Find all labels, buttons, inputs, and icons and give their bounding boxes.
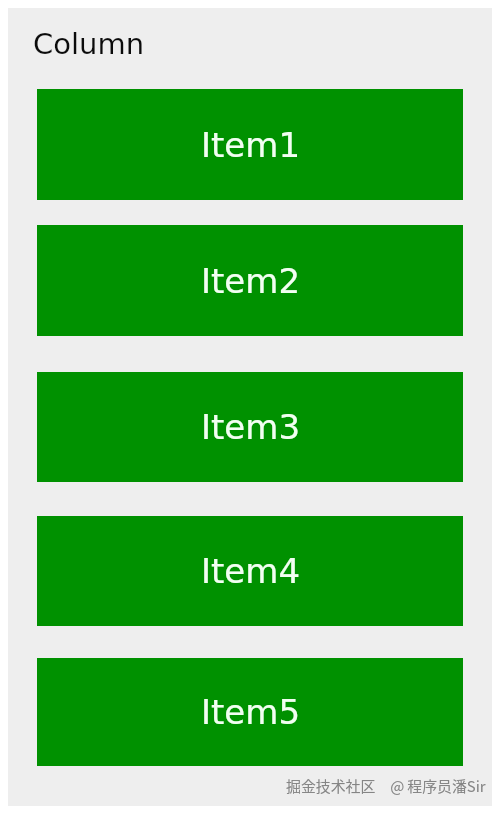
button[interactable]: Item4: [37, 516, 463, 626]
button[interactable]: Item5: [37, 658, 463, 766]
staticText: 掘金技术社区 @ 程序员潘Sir: [286, 775, 486, 797]
button[interactable]: Item3: [37, 372, 463, 482]
button[interactable]: Item1: [37, 89, 463, 200]
staticText: Item2: [201, 261, 301, 301]
button[interactable]: Item2: [37, 225, 463, 336]
staticText: Item3: [201, 407, 301, 447]
staticText: Column: [33, 27, 145, 61]
staticText: Item5: [201, 692, 301, 732]
staticText: Item4: [201, 551, 301, 591]
staticText: Item1: [201, 125, 301, 165]
